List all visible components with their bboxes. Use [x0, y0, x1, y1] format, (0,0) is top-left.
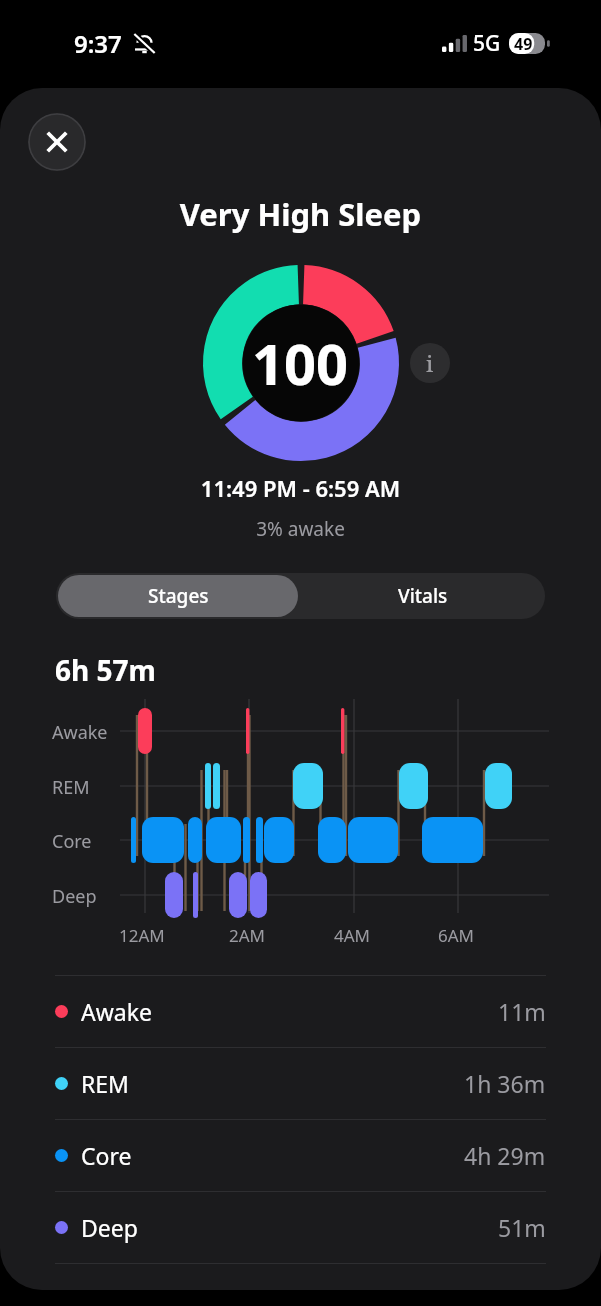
button[interactable]: Information about sleep score [410, 343, 450, 383]
button[interactable]: Core [0, 1120, 601, 1191]
button[interactable]: Close [28, 113, 86, 171]
staticText: REM [81, 1068, 129, 1099]
staticText: i [426, 348, 434, 378]
staticText: 2AM [229, 924, 266, 947]
staticText: 11:49 PM - 6:59 AM [0, 473, 601, 503]
staticText: 6h 57m [55, 651, 156, 689]
button[interactable]: Deep [0, 1192, 601, 1263]
staticText: 49 [514, 33, 533, 53]
staticText: 100 [252, 325, 349, 401]
staticText: 9:37 [74, 27, 122, 60]
button[interactable]: Awake [0, 976, 601, 1047]
staticText: 5G [473, 29, 501, 58]
staticText: Deep [52, 884, 97, 909]
staticText: 11m [498, 996, 546, 1027]
staticText: Awake [52, 720, 108, 745]
staticText: Very High Sleep [0, 193, 601, 235]
staticText: 3% awake [0, 516, 601, 542]
staticText: Stages [148, 583, 209, 609]
staticText: Core [52, 829, 92, 854]
staticText: 51m [498, 1212, 546, 1243]
staticText: 4h 29m [464, 1140, 546, 1171]
staticText: Awake [81, 996, 152, 1027]
staticText: Deep [81, 1212, 138, 1243]
staticText: Core [81, 1140, 132, 1171]
button[interactable]: Vitals [300, 573, 545, 619]
staticText: 4AM [334, 924, 371, 947]
staticText: 6AM [438, 924, 475, 947]
staticText: 12AM [119, 924, 165, 947]
button[interactable]: Stages [58, 575, 298, 617]
staticText: Vitals [398, 583, 448, 609]
staticText: 1h 36m [464, 1068, 546, 1099]
button[interactable]: REM [0, 1048, 601, 1119]
staticText: REM [52, 775, 90, 800]
